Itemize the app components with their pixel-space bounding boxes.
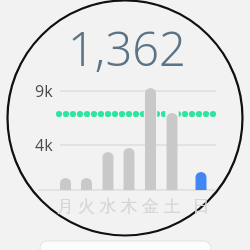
button[interactable]: Weekly step chart, 1,362 steps xyxy=(0,0,250,250)
